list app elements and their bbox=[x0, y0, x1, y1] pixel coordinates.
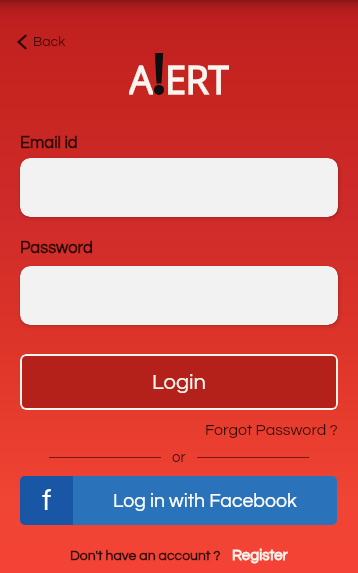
button[interactable]: Back bbox=[12, 30, 71, 54]
button[interactable] bbox=[20, 158, 338, 217]
staticText: A bbox=[129, 53, 153, 99]
staticText: Login bbox=[152, 371, 206, 394]
button[interactable]: Forgot Password ? bbox=[201, 419, 338, 441]
staticText: Back bbox=[33, 35, 66, 49]
staticText: or bbox=[172, 450, 186, 465]
other: Back bbox=[17, 35, 26, 49]
staticText: Password bbox=[20, 239, 93, 256]
button[interactable]: Register bbox=[232, 548, 288, 563]
staticText: Email id bbox=[20, 134, 78, 151]
staticText: Log in with Facebook bbox=[113, 491, 297, 511]
staticText: ERT bbox=[165, 53, 229, 99]
button[interactable]: f bbox=[20, 476, 337, 525]
button[interactable] bbox=[20, 266, 338, 325]
button[interactable]: Login bbox=[20, 354, 338, 410]
staticText: f bbox=[42, 485, 52, 516]
staticText: Don't have an account ? bbox=[70, 549, 221, 563]
